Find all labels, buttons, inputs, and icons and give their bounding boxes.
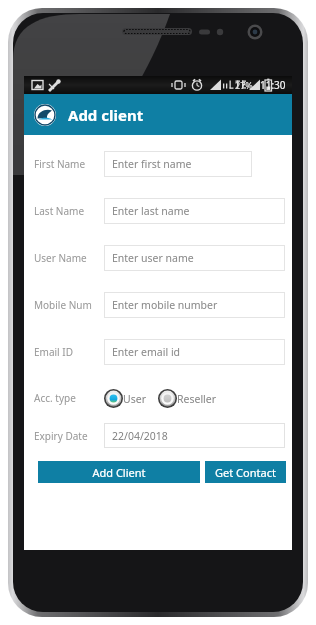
button[interactable]: User <box>104 389 146 408</box>
staticText: Enter first name <box>112 157 192 171</box>
staticText: Acc. type <box>34 391 76 405</box>
button[interactable]: Get Contact <box>205 461 286 483</box>
staticText: 22/04/2018 <box>112 429 168 443</box>
staticText: Email ID <box>34 345 73 359</box>
staticText: First Name <box>34 157 86 171</box>
button[interactable]: Add Client <box>38 461 200 483</box>
staticText: Add Client <box>92 465 146 480</box>
staticText: Last Name <box>34 204 85 218</box>
staticText: User Name <box>34 251 87 265</box>
staticText: Add client <box>68 105 144 125</box>
button[interactable]: App icon <box>34 104 56 126</box>
staticText: Enter mobile number <box>112 298 218 312</box>
button[interactable]: Enter last name <box>104 198 285 224</box>
staticText: Enter email id <box>112 345 181 359</box>
staticText: 11:30 <box>260 78 286 92</box>
staticText: User <box>123 392 146 406</box>
button[interactable]: 22/04/2018 <box>104 423 285 448</box>
staticText: 27% <box>235 79 253 91</box>
button[interactable]: Enter user name <box>104 245 285 271</box>
staticText: Expiry Date <box>34 429 88 443</box>
button[interactable]: Enter email id <box>104 339 285 365</box>
staticText: Get Contact <box>215 465 276 480</box>
staticText: Enter last name <box>112 204 190 218</box>
staticText: Mobile Num <box>34 298 92 312</box>
staticText: Reseller <box>177 392 217 406</box>
button[interactable]: Enter mobile number <box>104 292 285 318</box>
button[interactable]: Reseller <box>158 389 217 408</box>
staticText: Enter user name <box>112 251 194 265</box>
button[interactable]: Enter first name <box>104 151 252 177</box>
